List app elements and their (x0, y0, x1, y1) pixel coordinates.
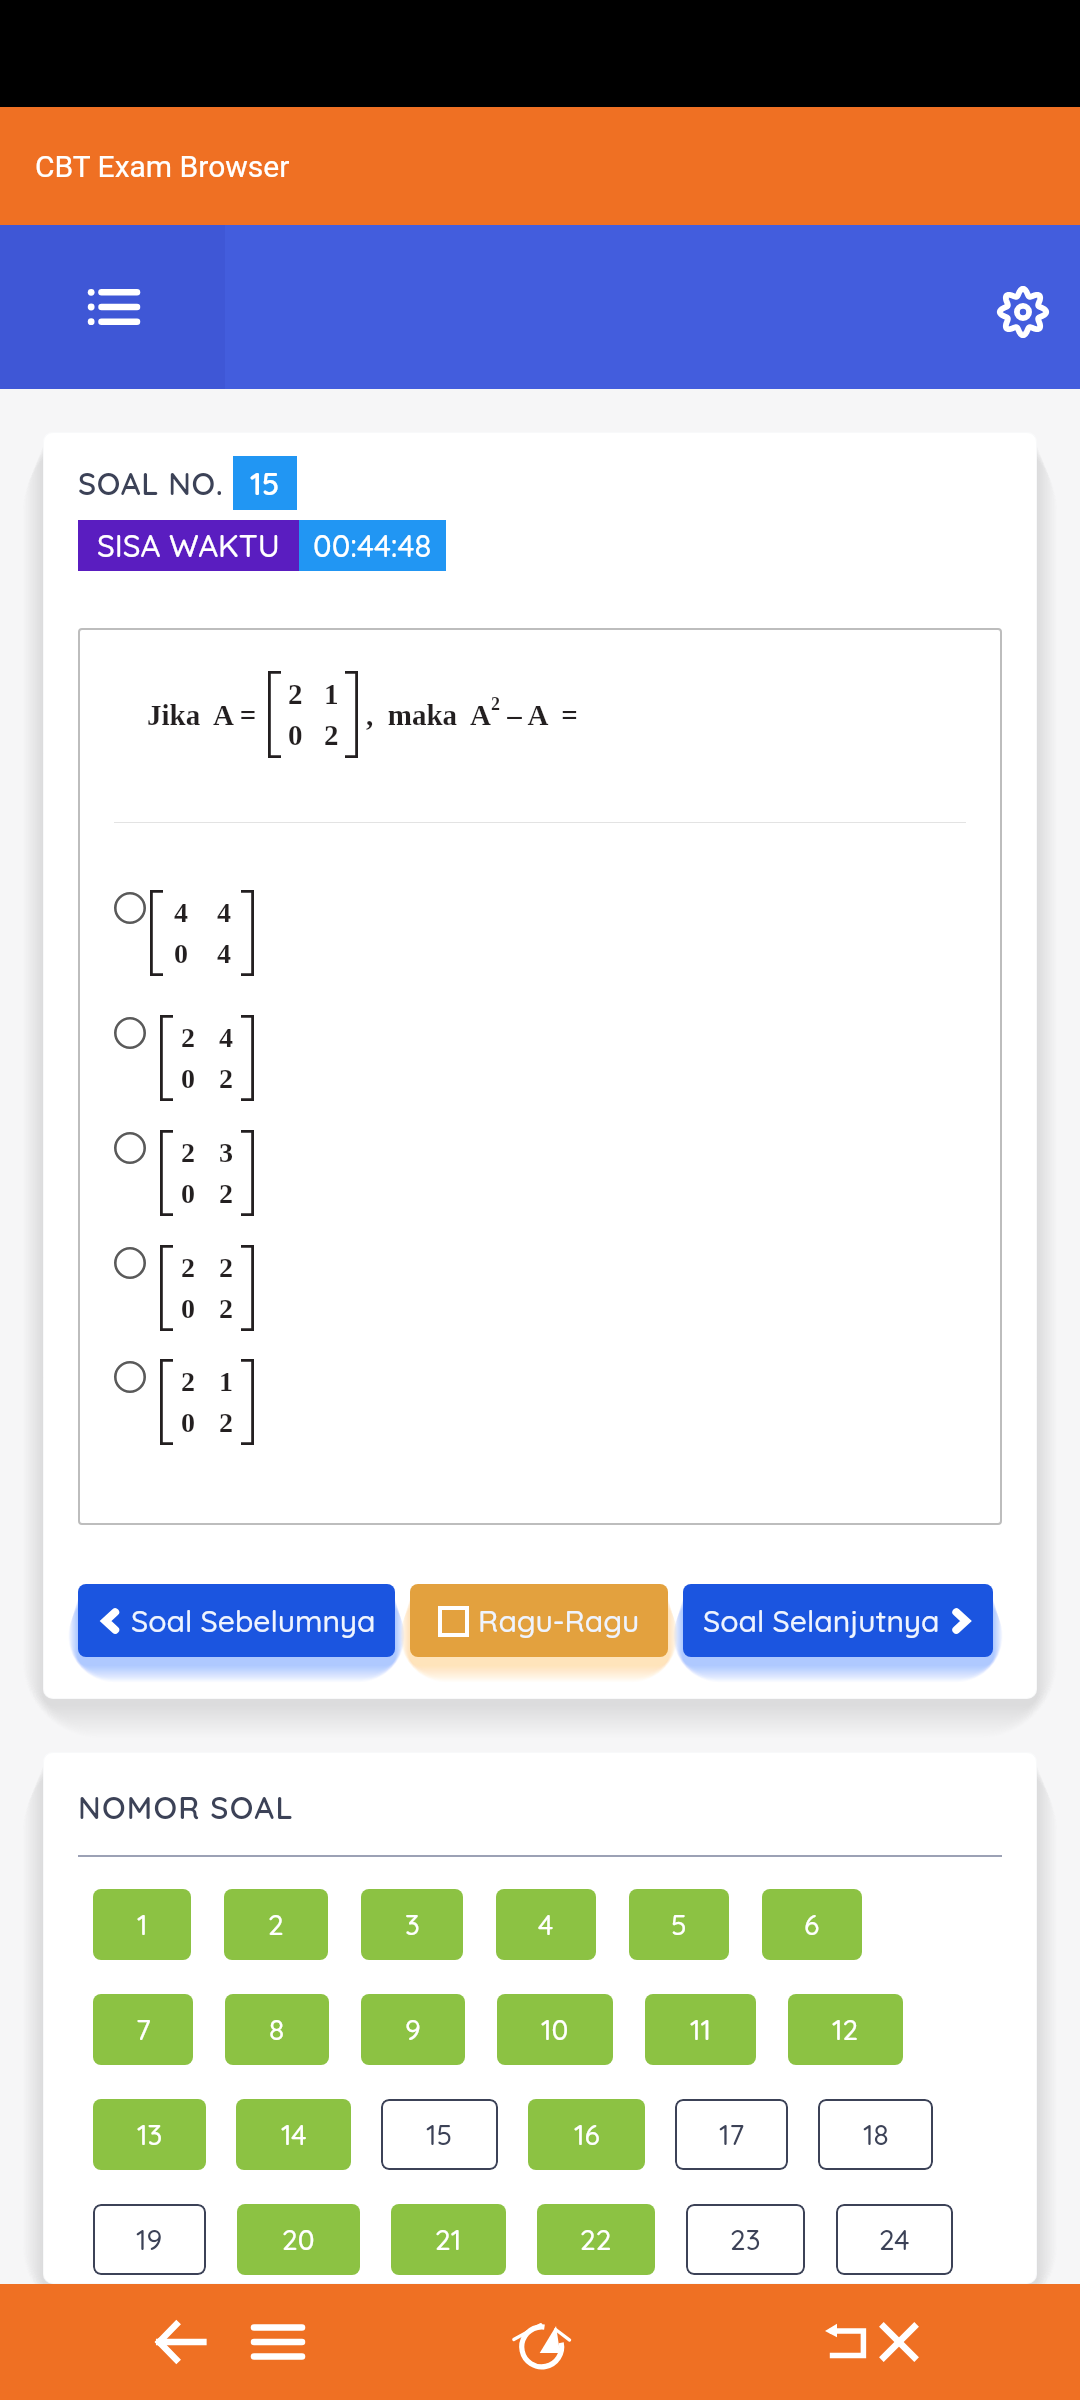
button[interactable]: Refresh (506, 2307, 576, 2377)
staticText: 24 (879, 2222, 910, 2257)
staticText: 2 (181, 1252, 195, 1283)
staticText: 2 (219, 1178, 233, 1209)
button[interactable]: Soal Sebelumnya (78, 1584, 395, 1657)
button[interactable]: Exit (814, 2307, 884, 2377)
staticText: 10 (541, 2012, 569, 2047)
staticText: 9 (405, 2012, 421, 2047)
staticText: 1 (219, 1366, 233, 1397)
button[interactable]: 12 (788, 1994, 903, 2065)
button[interactable]: Option 2402 (114, 1017, 146, 1049)
button[interactable]: Option 2202 (114, 1247, 146, 1279)
staticText: 3 (405, 1907, 420, 1942)
staticText: NOMOR SOAL (78, 1788, 294, 1827)
staticText: 2 (491, 694, 500, 714)
staticText: 15 (250, 464, 280, 503)
staticText: 0 (174, 938, 188, 969)
button[interactable]: 21 (391, 2204, 506, 2275)
button[interactable]: 18 (818, 2099, 933, 2170)
button[interactable]: 7 (93, 1994, 193, 2065)
button[interactable]: 24 (836, 2204, 953, 2275)
staticText: 18 (863, 2117, 889, 2152)
button[interactable]: Ragu-Ragu (410, 1584, 668, 1657)
button[interactable]: 3 (361, 1889, 463, 1960)
staticText: 5 (671, 1907, 687, 1942)
staticText: Soal Selanjutnya (703, 1602, 940, 1640)
staticText: Soal Sebelumnya (131, 1602, 376, 1640)
button[interactable]: 6 (762, 1889, 862, 1960)
staticText: 0 (181, 1178, 195, 1209)
button[interactable]: Back (145, 2307, 215, 2377)
staticText: 2 (181, 1022, 195, 1053)
button[interactable]: 15 (381, 2099, 498, 2170)
staticText: 17 (719, 2117, 745, 2152)
button[interactable]: 4 (496, 1889, 596, 1960)
staticText: 4 (219, 1022, 233, 1053)
staticText: 13 (137, 2117, 163, 2152)
button[interactable]: Soal Selanjutnya (683, 1584, 993, 1657)
staticText: 15 (426, 2117, 453, 2152)
button[interactable]: 20 (237, 2204, 360, 2275)
staticText: 11 (690, 2012, 712, 2047)
staticText: 2 (181, 1366, 195, 1397)
staticText: 21 (435, 2222, 462, 2257)
staticText: 2 (288, 678, 303, 710)
staticText: 8 (269, 2012, 285, 2047)
button[interactable]: Menu (0, 225, 225, 389)
staticText: 0 (288, 719, 303, 751)
button[interactable]: 19 (93, 2204, 206, 2275)
staticText: CBT Exam Browser (35, 149, 290, 184)
button[interactable]: 8 (225, 1994, 329, 2065)
staticText: 12 (832, 2012, 859, 2047)
button[interactable]: 10 (497, 1994, 613, 2065)
staticText: SOAL NO. (78, 464, 224, 503)
staticText: 4 (538, 1907, 554, 1942)
staticText: 2 (219, 1252, 233, 1283)
staticText: 2 (324, 719, 339, 751)
button[interactable]: 23 (686, 2204, 805, 2275)
button[interactable]: 17 (675, 2099, 788, 2170)
button[interactable]: Option 4404 (114, 892, 146, 924)
staticText: 2 (219, 1293, 233, 1324)
button[interactable]: Close (864, 2307, 934, 2377)
button[interactable]: 22 (537, 2204, 655, 2275)
staticText: 4 (217, 938, 231, 969)
button[interactable]: Option 2302 (114, 1132, 146, 1164)
staticText: 6 (804, 1907, 820, 1942)
staticText: SISA WAKTU (97, 526, 280, 565)
staticText: 2 (219, 1063, 233, 1094)
button[interactable]: 1 (93, 1889, 191, 1960)
staticText: 23 (730, 2222, 761, 2257)
staticText: 22 (580, 2222, 612, 2257)
staticText: – A = (500, 699, 578, 731)
staticText: 14 (281, 2117, 307, 2152)
staticText: 3 (219, 1137, 233, 1168)
button[interactable]: 5 (629, 1889, 729, 1960)
staticText: Ragu-Ragu (478, 1602, 640, 1640)
staticText: Jika A = (147, 699, 257, 731)
staticText: 7 (136, 2012, 151, 2047)
staticText: 20 (282, 2222, 315, 2257)
staticText: 4 (174, 897, 188, 928)
staticText: 19 (136, 2222, 163, 2257)
staticText: 1 (324, 678, 339, 710)
staticText: 4 (217, 897, 231, 928)
staticText: 0 (181, 1407, 195, 1438)
staticText: 00:44:48 (313, 526, 432, 565)
staticText: 16 (574, 2117, 600, 2152)
button[interactable]: 2 (224, 1889, 328, 1960)
button[interactable]: 13 (93, 2099, 206, 2170)
button[interactable]: Settings (968, 257, 1078, 367)
button[interactable]: Menu (243, 2307, 313, 2377)
button[interactable]: 14 (236, 2099, 351, 2170)
button[interactable]: Option 2102 (114, 1361, 146, 1393)
staticText: 0 (181, 1063, 195, 1094)
staticText: , maka A (366, 699, 491, 731)
button[interactable]: 11 (645, 1994, 756, 2065)
staticText: 2 (219, 1407, 233, 1438)
staticText: 2 (268, 1907, 284, 1942)
staticText: 2 (181, 1137, 195, 1168)
staticText: 1 (137, 1907, 148, 1942)
button[interactable]: 16 (528, 2099, 645, 2170)
button[interactable]: 9 (361, 1994, 465, 2065)
staticText: 0 (181, 1293, 195, 1324)
